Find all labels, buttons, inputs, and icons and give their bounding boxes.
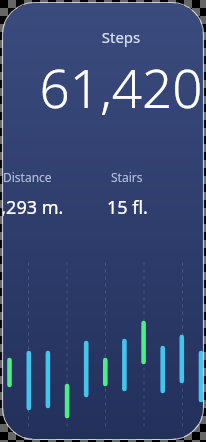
- staticText: 61,420: [3, 51, 203, 123]
- staticText: Stairs: [111, 169, 143, 185]
- staticText: 15 fl.: [107, 195, 148, 220]
- staticText: 1,293 m.: [3, 195, 64, 220]
- staticText: Steps: [3, 27, 203, 47]
- staticText: Distance: [3, 169, 52, 185]
